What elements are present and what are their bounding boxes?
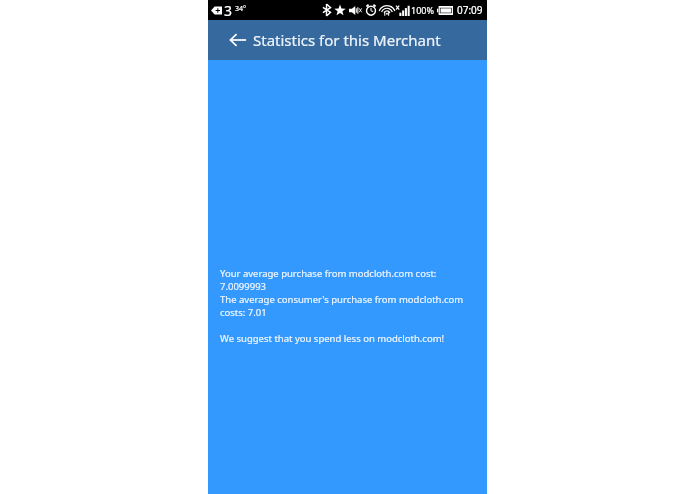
staticText: 3 <box>224 1 233 20</box>
button[interactable]: Back <box>220 22 256 58</box>
staticText: The average consumer's purchase from mod… <box>220 293 475 319</box>
staticText: We suggest that you spend less on modclo… <box>220 332 445 345</box>
staticText: 34° <box>235 4 247 14</box>
staticText: Your average purchase from modcloth.com … <box>220 267 475 293</box>
staticText: 07:09 <box>457 3 483 17</box>
staticText: 100% <box>411 4 434 16</box>
staticText: Statistics for this Merchant <box>253 30 441 50</box>
